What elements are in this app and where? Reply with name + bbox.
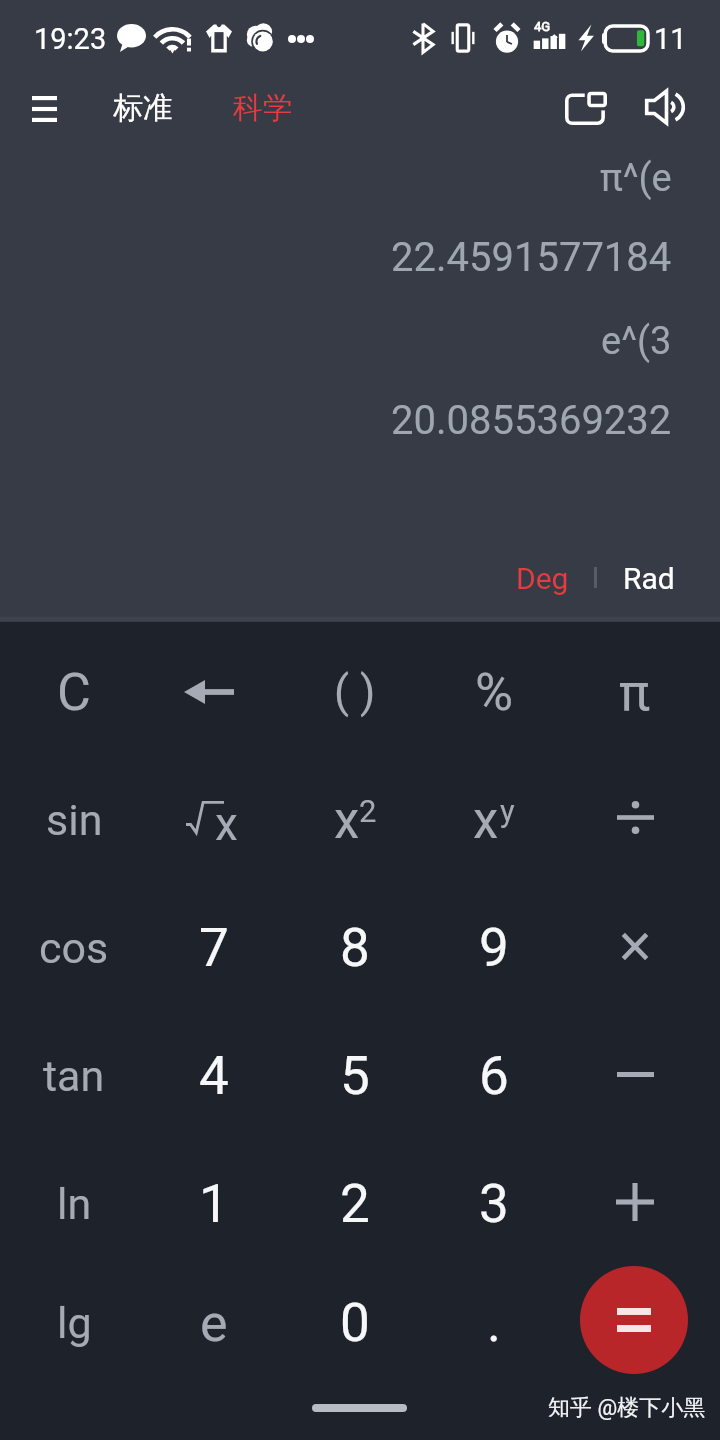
staticText: 2 [340,1173,370,1235]
button[interactable]: Picture in picture [550,77,622,139]
staticText: 19:23 [34,22,107,56]
button[interactable]: 标准 [100,77,186,139]
button[interactable]: Square root of x [144,756,284,884]
staticText: 9 [479,917,509,979]
button[interactable]: Sound [630,76,702,138]
staticText: lg [57,1298,92,1348]
button[interactable]: Clear [4,628,144,756]
button[interactable]: ln [4,1140,144,1268]
staticText: e^(3 [601,319,672,364]
staticText: C [57,662,91,723]
staticText: sin [46,795,103,845]
button[interactable]: Decimal point [424,1259,564,1387]
button[interactable]: 6 [424,1012,564,1140]
staticText: 2 [359,793,377,829]
staticText: . [487,1292,501,1354]
staticText: 标准 [113,89,173,127]
button[interactable]: tan [4,1012,144,1140]
staticText: x [473,791,499,847]
staticText: π^(e [600,156,672,201]
button[interactable]: 9 [424,884,564,1012]
button[interactable]: e [144,1259,284,1387]
button[interactable]: Multiply [565,884,705,1012]
staticText: 4G [534,19,551,34]
staticText: ( ) [334,666,376,718]
button[interactable]: Parentheses [285,628,425,756]
staticText: Rad [623,561,675,596]
button[interactable]: 8 [285,884,425,1012]
staticText: y [500,793,515,829]
button[interactable]: 3 [424,1140,564,1268]
button[interactable]: x squared [285,756,425,884]
staticText: 22.4591577184 [391,234,672,281]
button[interactable]: 1 [144,1140,284,1268]
button[interactable]: 2 [285,1140,425,1268]
staticText: 知乎 @楼下小黑 [548,1394,706,1422]
button[interactable]: 4 [144,1012,284,1140]
button[interactable]: cos [4,884,144,1012]
staticText: x [215,797,238,851]
button[interactable]: sin [4,756,144,884]
button[interactable]: 0 [285,1259,425,1387]
staticText: 0 [340,1292,370,1354]
staticText: π [619,662,651,723]
button[interactable]: Pi [565,628,705,756]
button[interactable]: 5 [285,1012,425,1140]
staticText: 6 [479,1045,509,1107]
staticText: e [200,1293,228,1354]
staticText: 8 [340,917,370,979]
button[interactable]: 科学 [220,77,306,139]
staticText: 7 [199,917,229,979]
button[interactable]: lg [4,1259,144,1387]
staticText: 1 [199,1173,229,1235]
staticText: % [475,662,514,723]
button[interactable]: Deg [505,552,579,604]
button[interactable]: 7 [144,884,284,1012]
staticText: tan [43,1051,105,1101]
staticText: Deg [516,561,569,596]
button[interactable]: Rad [612,552,686,604]
button[interactable]: Menu [13,78,75,140]
button[interactable]: Backspace [144,628,284,756]
staticText: 科学 [233,89,293,127]
button[interactable]: Plus [565,1140,705,1268]
button[interactable]: Divide [565,756,705,884]
staticText: 5 [340,1045,370,1107]
button[interactable]: Percent [424,628,564,756]
staticText: cos [39,923,109,973]
staticText: 3 [479,1173,509,1235]
button[interactable]: Minus [565,1012,705,1140]
staticText: 11 [654,22,687,56]
button[interactable]: x to the power of y [424,756,564,884]
staticText: 4 [199,1045,229,1107]
button[interactable]: Equals [580,1266,688,1374]
staticText: ln [57,1179,92,1229]
staticText: x [334,791,360,847]
staticText: 20.0855369232 [391,397,672,444]
